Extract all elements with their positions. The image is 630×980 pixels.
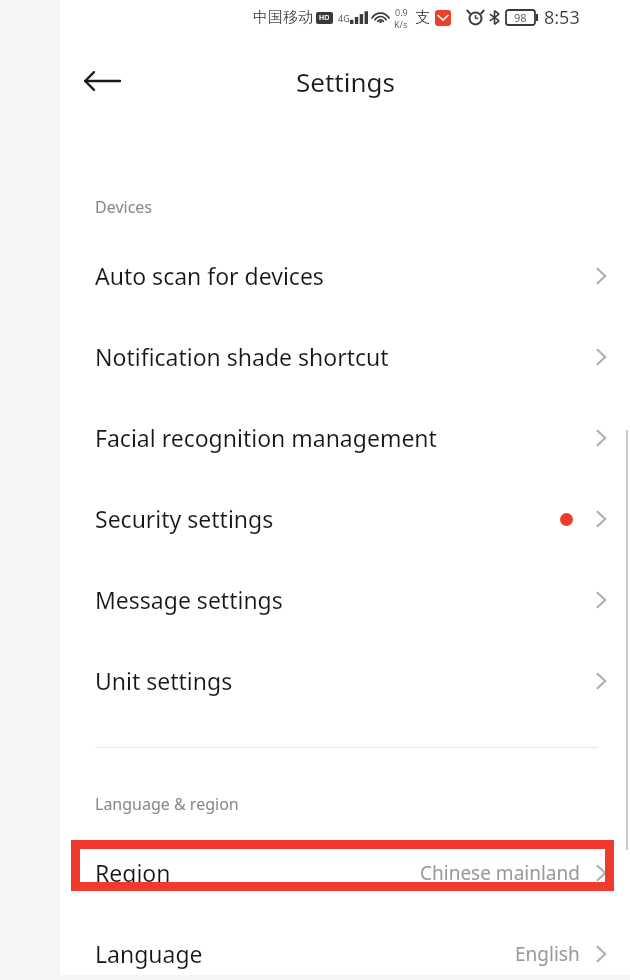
button[interactable]: Message settings (60, 559, 630, 640)
staticText: Language (95, 938, 203, 969)
button[interactable]: Language (60, 913, 630, 980)
staticText: 中国移动 (253, 8, 313, 27)
staticText: 0.9 (395, 6, 408, 18)
staticText: Auto scan for devices (95, 260, 324, 291)
staticText: Notification shade shortcut (95, 341, 389, 372)
staticText: Language & region (95, 793, 239, 815)
staticText: 4G (338, 12, 350, 24)
staticText: Message settings (95, 584, 283, 615)
staticText: 98 (514, 10, 527, 25)
button[interactable]: Region (60, 832, 630, 913)
staticText: Chinese mainland (420, 860, 580, 886)
button[interactable]: Auto scan for devices (60, 235, 630, 316)
staticText: Facial recognition management (95, 422, 437, 453)
staticText: 8:53 (544, 5, 580, 30)
staticText: Devices (95, 196, 153, 218)
staticText: Security settings (95, 503, 274, 534)
staticText: HD (319, 13, 330, 23)
staticText: English (515, 941, 580, 967)
button[interactable]: Unit settings (60, 640, 630, 721)
staticText: Settings (296, 64, 395, 99)
button[interactable]: Facial recognition management (60, 397, 630, 478)
button[interactable]: Back (74, 53, 130, 109)
staticText: Region (95, 857, 171, 888)
button[interactable]: Security settings (60, 478, 630, 559)
button[interactable]: Notification shade shortcut (60, 316, 630, 397)
staticText: 支 (415, 8, 430, 27)
staticText: Unit settings (95, 665, 233, 696)
staticText: K/s (394, 18, 408, 30)
